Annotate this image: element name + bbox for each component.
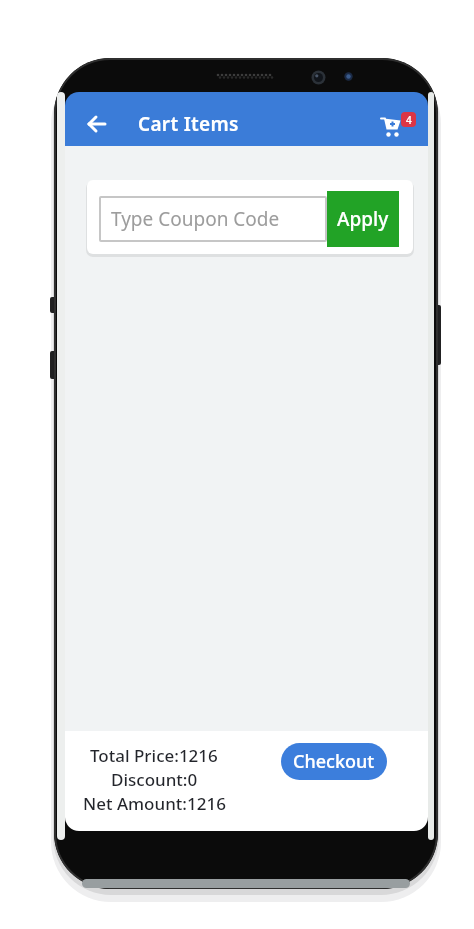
staticText: Apply — [337, 206, 389, 232]
staticText: Net Amount:1216 — [83, 792, 226, 815]
staticText: 4 — [406, 113, 412, 127]
button[interactable] — [81, 108, 113, 140]
staticText: Total Price:1216 — [90, 744, 218, 767]
button[interactable]: Checkout — [281, 743, 387, 780]
button[interactable]: 4 — [380, 112, 416, 142]
staticText: Type Coupon Code — [111, 206, 280, 232]
staticText: Checkout — [293, 749, 375, 774]
button[interactable]: Type Coupon Code — [99, 196, 327, 242]
button[interactable]: Apply — [327, 191, 399, 247]
staticText: Cart Items — [138, 111, 239, 137]
staticText: Discount:0 — [111, 768, 198, 791]
